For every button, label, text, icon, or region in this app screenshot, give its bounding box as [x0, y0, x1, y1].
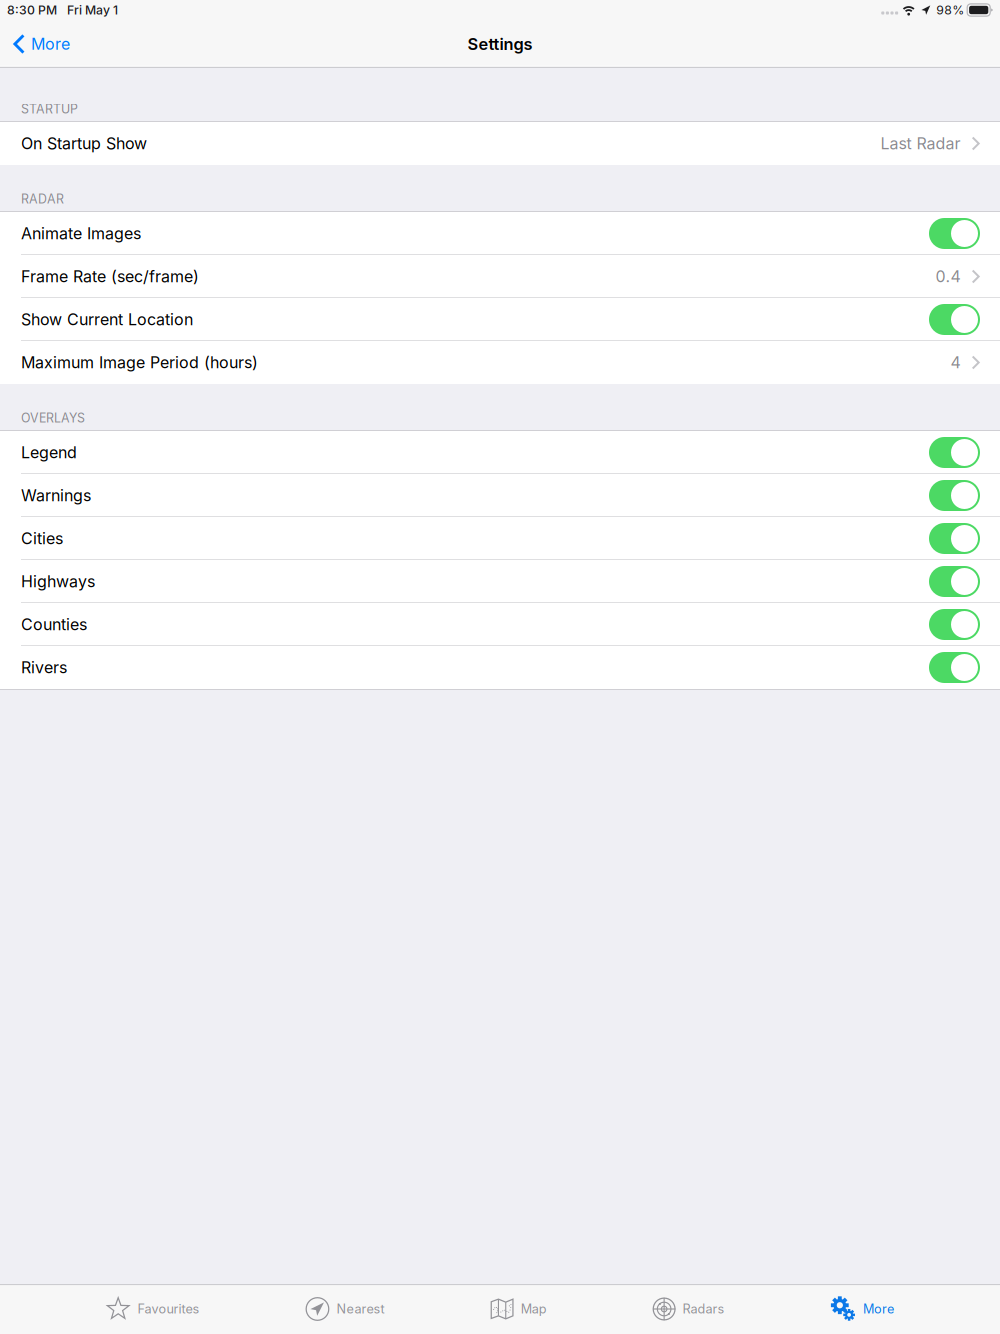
staticText: More	[31, 34, 70, 54]
button[interactable]: Radars	[653, 1284, 724, 1334]
staticText: Rivers	[21, 658, 67, 677]
button[interactable]: More	[0, 22, 80, 66]
staticText: Map	[521, 1301, 547, 1317]
staticText: Cities	[21, 529, 63, 548]
button[interactable]: Rivers	[929, 652, 980, 683]
button[interactable]: Highways	[929, 566, 980, 597]
button[interactable]: More	[830, 1284, 894, 1334]
staticText: OVERLAYS	[21, 410, 85, 425]
staticText: STARTUP	[21, 101, 78, 116]
staticText: Radars	[682, 1301, 724, 1317]
staticText: 8:30 PM	[7, 3, 57, 17]
staticText: Nearest	[336, 1301, 384, 1317]
staticText: On Startup Show	[21, 134, 147, 153]
staticText: 4	[950, 353, 960, 372]
staticText: Legend	[21, 443, 77, 462]
staticText: Counties	[21, 615, 87, 634]
staticText: Fri May 1	[67, 3, 118, 17]
button[interactable]: Favourites	[106, 1284, 199, 1334]
staticText: Frame Rate (sec/frame)	[21, 267, 199, 286]
button[interactable]: Nearest	[305, 1284, 384, 1334]
staticText: 98%	[936, 3, 964, 17]
button[interactable]: Frame Rate (sec/frame)	[0, 255, 1000, 298]
staticText: Favourites	[137, 1301, 199, 1317]
button[interactable]: Animate Images	[929, 218, 980, 249]
staticText: Settings	[467, 34, 532, 54]
staticText: Animate Images	[21, 224, 141, 243]
staticText: RADAR	[21, 191, 64, 206]
staticText: Warnings	[21, 486, 91, 505]
staticText: Maximum Image Period (hours)	[21, 353, 258, 372]
button[interactable]: Maximum Image Period (hours)	[0, 341, 1000, 384]
button[interactable]: Show Current Location	[929, 304, 980, 335]
button[interactable]: Warnings	[929, 480, 980, 511]
staticText: Highways	[21, 572, 95, 591]
staticText: 0.4	[935, 267, 960, 286]
button[interactable]: Counties	[929, 609, 980, 640]
staticText: Show Current Location	[21, 310, 193, 329]
button[interactable]: Legend	[929, 437, 980, 468]
button[interactable]: Cities	[929, 523, 980, 554]
button[interactable]: Map	[490, 1284, 547, 1334]
button[interactable]: On Startup Show	[0, 122, 1000, 165]
staticText: More	[863, 1301, 894, 1317]
staticText: Last Radar	[880, 134, 960, 153]
